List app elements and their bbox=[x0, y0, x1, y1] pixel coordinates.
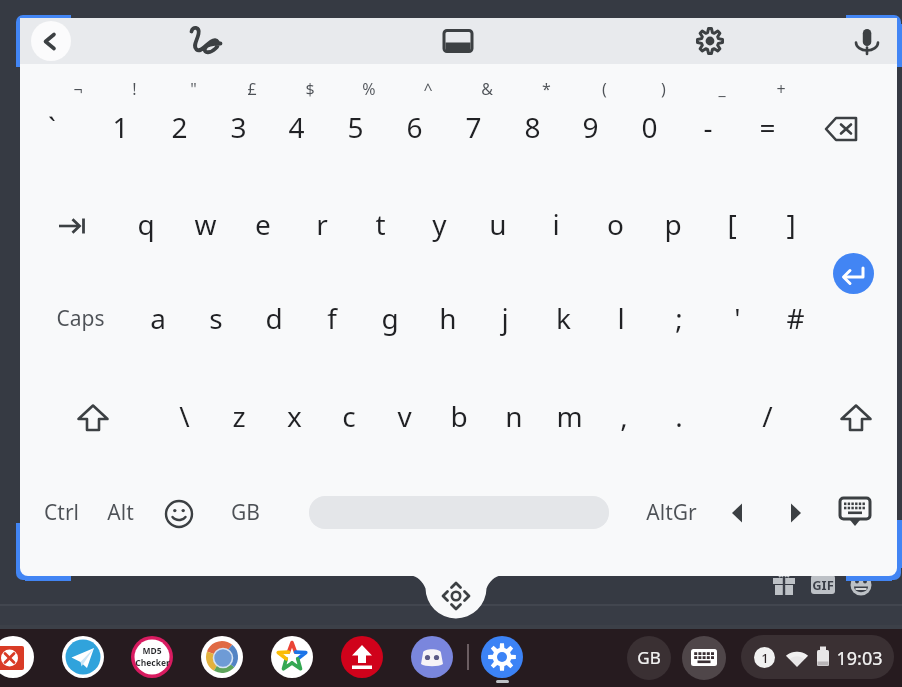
staticText: = bbox=[759, 108, 776, 146]
button[interactable]: Handwriting input bbox=[186, 21, 226, 61]
staticText: £ bbox=[247, 78, 257, 100]
staticText: ¬ bbox=[73, 78, 83, 100]
staticText: n bbox=[505, 397, 523, 435]
button[interactable]: System status bbox=[741, 635, 894, 679]
staticText: 7 bbox=[465, 108, 482, 146]
staticText: $ bbox=[305, 78, 315, 100]
staticText: AltGr bbox=[646, 498, 697, 527]
staticText: p bbox=[664, 205, 682, 243]
button[interactable]: Hide keyboard bbox=[838, 497, 872, 529]
button[interactable]: Backspace bbox=[821, 112, 861, 146]
staticText: w bbox=[194, 205, 217, 243]
staticText: ^ bbox=[423, 78, 433, 100]
button[interactable]: Shift bbox=[76, 403, 110, 433]
staticText: * bbox=[542, 78, 551, 100]
staticText: MD5 bbox=[142, 645, 162, 657]
staticText: # bbox=[786, 299, 805, 337]
staticText: k bbox=[556, 299, 571, 337]
staticText: + bbox=[776, 78, 786, 100]
staticText: _ bbox=[718, 78, 726, 100]
staticText: GB bbox=[231, 498, 260, 527]
staticText: 6 bbox=[406, 108, 423, 146]
staticText: Caps bbox=[56, 304, 105, 333]
staticText: 2 bbox=[171, 108, 188, 146]
button[interactable]: MD5 Checker bbox=[131, 636, 173, 678]
staticText: Alt bbox=[107, 498, 134, 527]
button[interactable]: Move cursor right bbox=[781, 499, 809, 527]
button[interactable]: Telegram bbox=[62, 636, 104, 678]
staticText: z bbox=[232, 397, 246, 435]
staticText: 19:03 bbox=[836, 646, 883, 671]
staticText: x bbox=[287, 397, 302, 435]
staticText: a bbox=[150, 299, 166, 337]
button[interactable]: Move cursor left bbox=[724, 499, 752, 527]
staticText: Checker bbox=[135, 657, 170, 669]
staticText: ' bbox=[734, 299, 741, 337]
button[interactable]: Emoji bbox=[849, 573, 873, 597]
staticText: 8 bbox=[524, 108, 541, 146]
staticText: q bbox=[137, 205, 155, 243]
button[interactable]: Chrome bbox=[201, 636, 243, 678]
staticText: % bbox=[362, 78, 376, 100]
staticText: 3 bbox=[230, 108, 247, 146]
staticText: 1 bbox=[761, 649, 769, 667]
staticText: ` bbox=[48, 108, 56, 146]
button[interactable]: Settings bbox=[690, 21, 730, 61]
button[interactable]: Upload bbox=[341, 636, 383, 678]
button[interactable]: On-screen keyboard bbox=[682, 636, 726, 680]
button[interactable]: Input method GB bbox=[627, 636, 671, 680]
staticText: h bbox=[439, 299, 457, 337]
staticText: 0 bbox=[641, 108, 658, 146]
staticText: s bbox=[209, 299, 223, 337]
staticText: 4 bbox=[288, 108, 305, 146]
staticText: 9 bbox=[582, 108, 599, 146]
staticText: t bbox=[375, 205, 386, 243]
staticText: [ bbox=[727, 205, 737, 243]
staticText: d bbox=[265, 299, 283, 337]
staticText: m bbox=[556, 397, 583, 435]
button[interactable]: Settings bbox=[481, 636, 523, 678]
staticText: c bbox=[342, 397, 356, 435]
button[interactable]: Voice input bbox=[847, 21, 887, 61]
button[interactable]: Discord bbox=[411, 636, 453, 678]
staticText: ; bbox=[675, 299, 683, 337]
staticText: & bbox=[481, 78, 493, 100]
button[interactable]: Tab bbox=[55, 213, 91, 239]
staticText: y bbox=[432, 205, 447, 243]
staticText: g bbox=[381, 299, 399, 337]
staticText: f bbox=[327, 299, 337, 337]
staticText: j bbox=[501, 299, 509, 337]
staticText: " bbox=[190, 78, 197, 100]
staticText: e bbox=[255, 205, 271, 243]
staticText: GB bbox=[637, 646, 661, 669]
button[interactable]: Back bbox=[31, 21, 71, 61]
staticText: v bbox=[397, 397, 412, 435]
button[interactable]: Emoji bbox=[163, 498, 195, 530]
staticText: ( bbox=[602, 78, 607, 100]
button[interactable]: GIF bbox=[811, 575, 835, 594]
staticText: ! bbox=[132, 78, 137, 100]
staticText: l bbox=[617, 299, 625, 337]
staticText: GIF bbox=[812, 576, 834, 594]
button[interactable]: Move keyboard bbox=[395, 550, 520, 625]
button[interactable]: App bbox=[0, 636, 34, 678]
staticText: , bbox=[620, 397, 628, 435]
staticText: r bbox=[316, 205, 328, 243]
staticText: ] bbox=[786, 205, 796, 243]
staticText: 5 bbox=[347, 108, 364, 146]
button[interactable]: Enter bbox=[833, 253, 874, 294]
staticText: u bbox=[489, 205, 507, 243]
staticText: \ bbox=[179, 397, 190, 435]
button[interactable]: Dock keyboard bbox=[438, 21, 478, 61]
button[interactable]: Star app bbox=[271, 636, 313, 678]
staticText: Ctrl bbox=[44, 498, 79, 527]
staticText: b bbox=[450, 397, 468, 435]
button[interactable]: Shift bbox=[839, 403, 873, 433]
button[interactable]: Gift bbox=[770, 570, 798, 598]
staticText: - bbox=[703, 108, 713, 146]
staticText: / bbox=[762, 397, 773, 435]
staticText: o bbox=[607, 205, 624, 243]
staticText: i bbox=[552, 205, 560, 243]
staticText: . bbox=[675, 397, 683, 435]
